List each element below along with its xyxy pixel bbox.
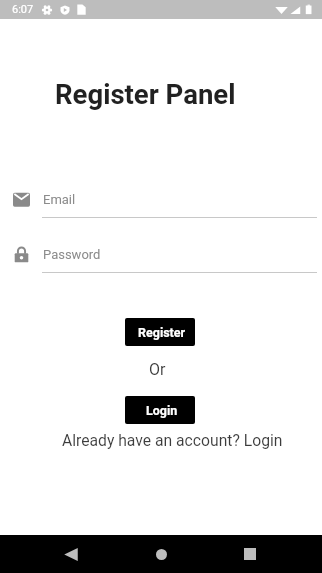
staticText: Register Panel — [55, 78, 236, 110]
button[interactable]: Already have an account? Login — [62, 431, 283, 449]
button[interactable]: Password — [0, 247, 322, 273]
staticText: 6:07 — [12, 3, 34, 16]
staticText: Login — [146, 403, 178, 418]
button[interactable]: Back — [51, 535, 91, 573]
staticText: Password — [43, 247, 101, 262]
button[interactable]: Home — [141, 535, 181, 573]
button[interactable]: Register — [125, 318, 195, 346]
staticText: Or — [149, 360, 166, 379]
button[interactable]: Email — [0, 192, 322, 218]
staticText: Register — [138, 325, 186, 340]
staticText: Email — [43, 192, 76, 207]
button[interactable]: Login — [125, 396, 195, 424]
button[interactable]: Recents — [230, 535, 270, 573]
